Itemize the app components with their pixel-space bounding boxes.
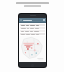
button[interactable] xyxy=(20,30,45,32)
button[interactable] xyxy=(20,27,45,29)
button[interactable] xyxy=(19,36,46,62)
button[interactable]: Menu xyxy=(18,13,47,68)
button[interactable]: Menu xyxy=(19,18,46,22)
button[interactable] xyxy=(20,33,45,35)
button[interactable]: Menu xyxy=(20,19,22,21)
button[interactable] xyxy=(20,24,45,26)
